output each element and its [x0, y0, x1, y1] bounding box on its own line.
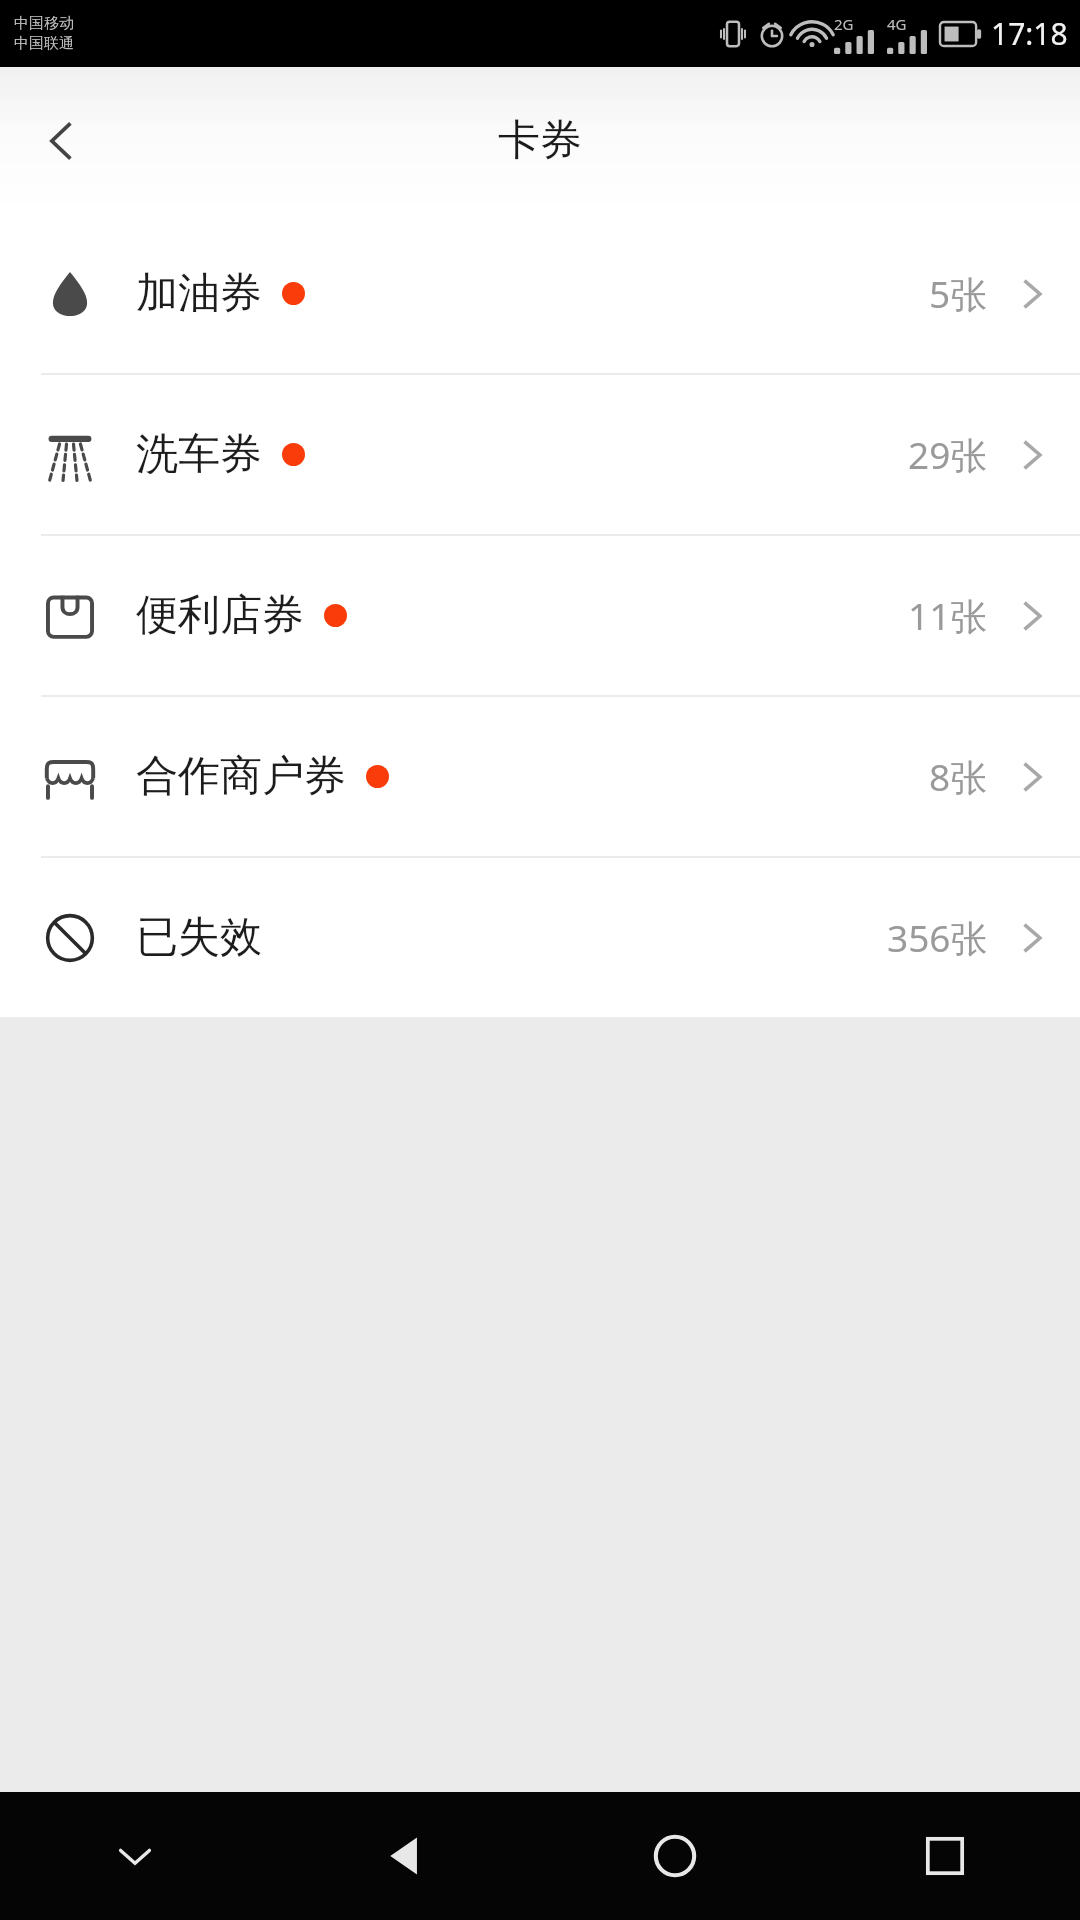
button[interactable]: Back	[14, 93, 110, 189]
staticText: 4G	[887, 14, 907, 34]
button[interactable]: Collapse	[0, 1792, 270, 1920]
button[interactable]: 加油券	[0, 214, 1080, 373]
staticText: 17:18	[991, 13, 1068, 54]
staticText: 356张	[887, 912, 988, 963]
button[interactable]: Home	[540, 1792, 810, 1920]
button[interactable]: Back	[270, 1792, 540, 1920]
button[interactable]: 便利店券	[0, 536, 1080, 695]
button[interactable]: 合作商户券	[0, 697, 1080, 856]
button[interactable]: Recent apps	[810, 1792, 1080, 1920]
staticText: 29张	[908, 429, 988, 480]
staticText: 加油券	[136, 267, 262, 320]
button[interactable]: 已失效	[0, 858, 1080, 1017]
staticText: 2G	[834, 14, 854, 34]
staticText: 已失效	[136, 911, 262, 964]
staticText: 5张	[929, 268, 988, 319]
staticText: 合作商户券	[136, 750, 346, 803]
staticText: 11张	[908, 590, 988, 641]
staticText: 8张	[929, 751, 988, 802]
staticText: 中国移动	[14, 14, 74, 33]
staticText: 洗车券	[136, 428, 262, 481]
staticText: 卡券	[498, 114, 582, 167]
staticText: 中国联通	[14, 34, 74, 53]
staticText: 便利店券	[136, 589, 304, 642]
button[interactable]: 洗车券	[0, 375, 1080, 534]
